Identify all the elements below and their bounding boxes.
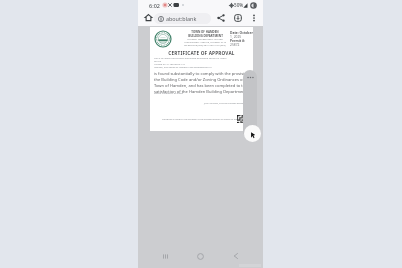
staticText: 6:02: [149, 2, 160, 9]
staticText: about:blank: [166, 15, 197, 22]
staticText: Permit #:: [230, 38, 246, 42]
button[interactable]: Download: [231, 11, 245, 25]
button[interactable]: Share: [214, 11, 228, 25]
staticText: satisfaction of the Hamden Building Depa…: [154, 89, 248, 95]
staticText: Hamden, and owned by Hamden Land Develop…: [154, 66, 212, 69]
button[interactable]: Home: [193, 249, 207, 263]
staticText: Located at 141 TREADWELL ST: [154, 63, 185, 66]
staticText: This is to certify that the work authori…: [154, 57, 227, 60]
staticText: 2750 DIXWELL AVENUE, HAMDEN CT 06518: [184, 41, 226, 44]
staticText: Town of Hamden, and has been completed t…: [154, 83, 248, 89]
staticText: Certificate is valid for the duration of…: [162, 118, 254, 121]
staticText: 25872: [230, 42, 240, 46]
button[interactable]: Page tools: [243, 70, 257, 134]
staticText: 50%: [234, 2, 244, 8]
staticText: TOWN OF HAMDEN: [191, 30, 219, 34]
staticText: TELEPHONE (203) 287-7100 • FAX (203) 287…: [184, 44, 226, 47]
staticText: CERTIFICATE OF APPROVAL: [150, 50, 253, 56]
button[interactable]: Cursor tool: [244, 125, 261, 142]
staticText: Date: October: [230, 30, 253, 34]
button[interactable]: More options: [247, 11, 260, 24]
staticText: the Building Code and/or Zoning Ordinanc…: [154, 77, 252, 83]
staticText: John Yahoudy, Chief of Hamden Building O…: [204, 102, 254, 105]
staticText: BUILDING DEPARTMENT: [188, 34, 223, 38]
button[interactable]: Recents: [158, 249, 172, 263]
button[interactable]: Back: [229, 249, 243, 263]
staticText: for the: [154, 60, 161, 63]
staticText: Special Conditions: as noted: [154, 92, 183, 95]
button[interactable]: Home: [142, 11, 155, 24]
button[interactable]: about:blank: [154, 13, 211, 24]
staticText: is found substantially to comply with th…: [154, 71, 252, 77]
staticText: HAMDEN GOVERNMENT CENTER: [187, 38, 223, 41]
staticText: 1, 2025: [230, 34, 242, 38]
